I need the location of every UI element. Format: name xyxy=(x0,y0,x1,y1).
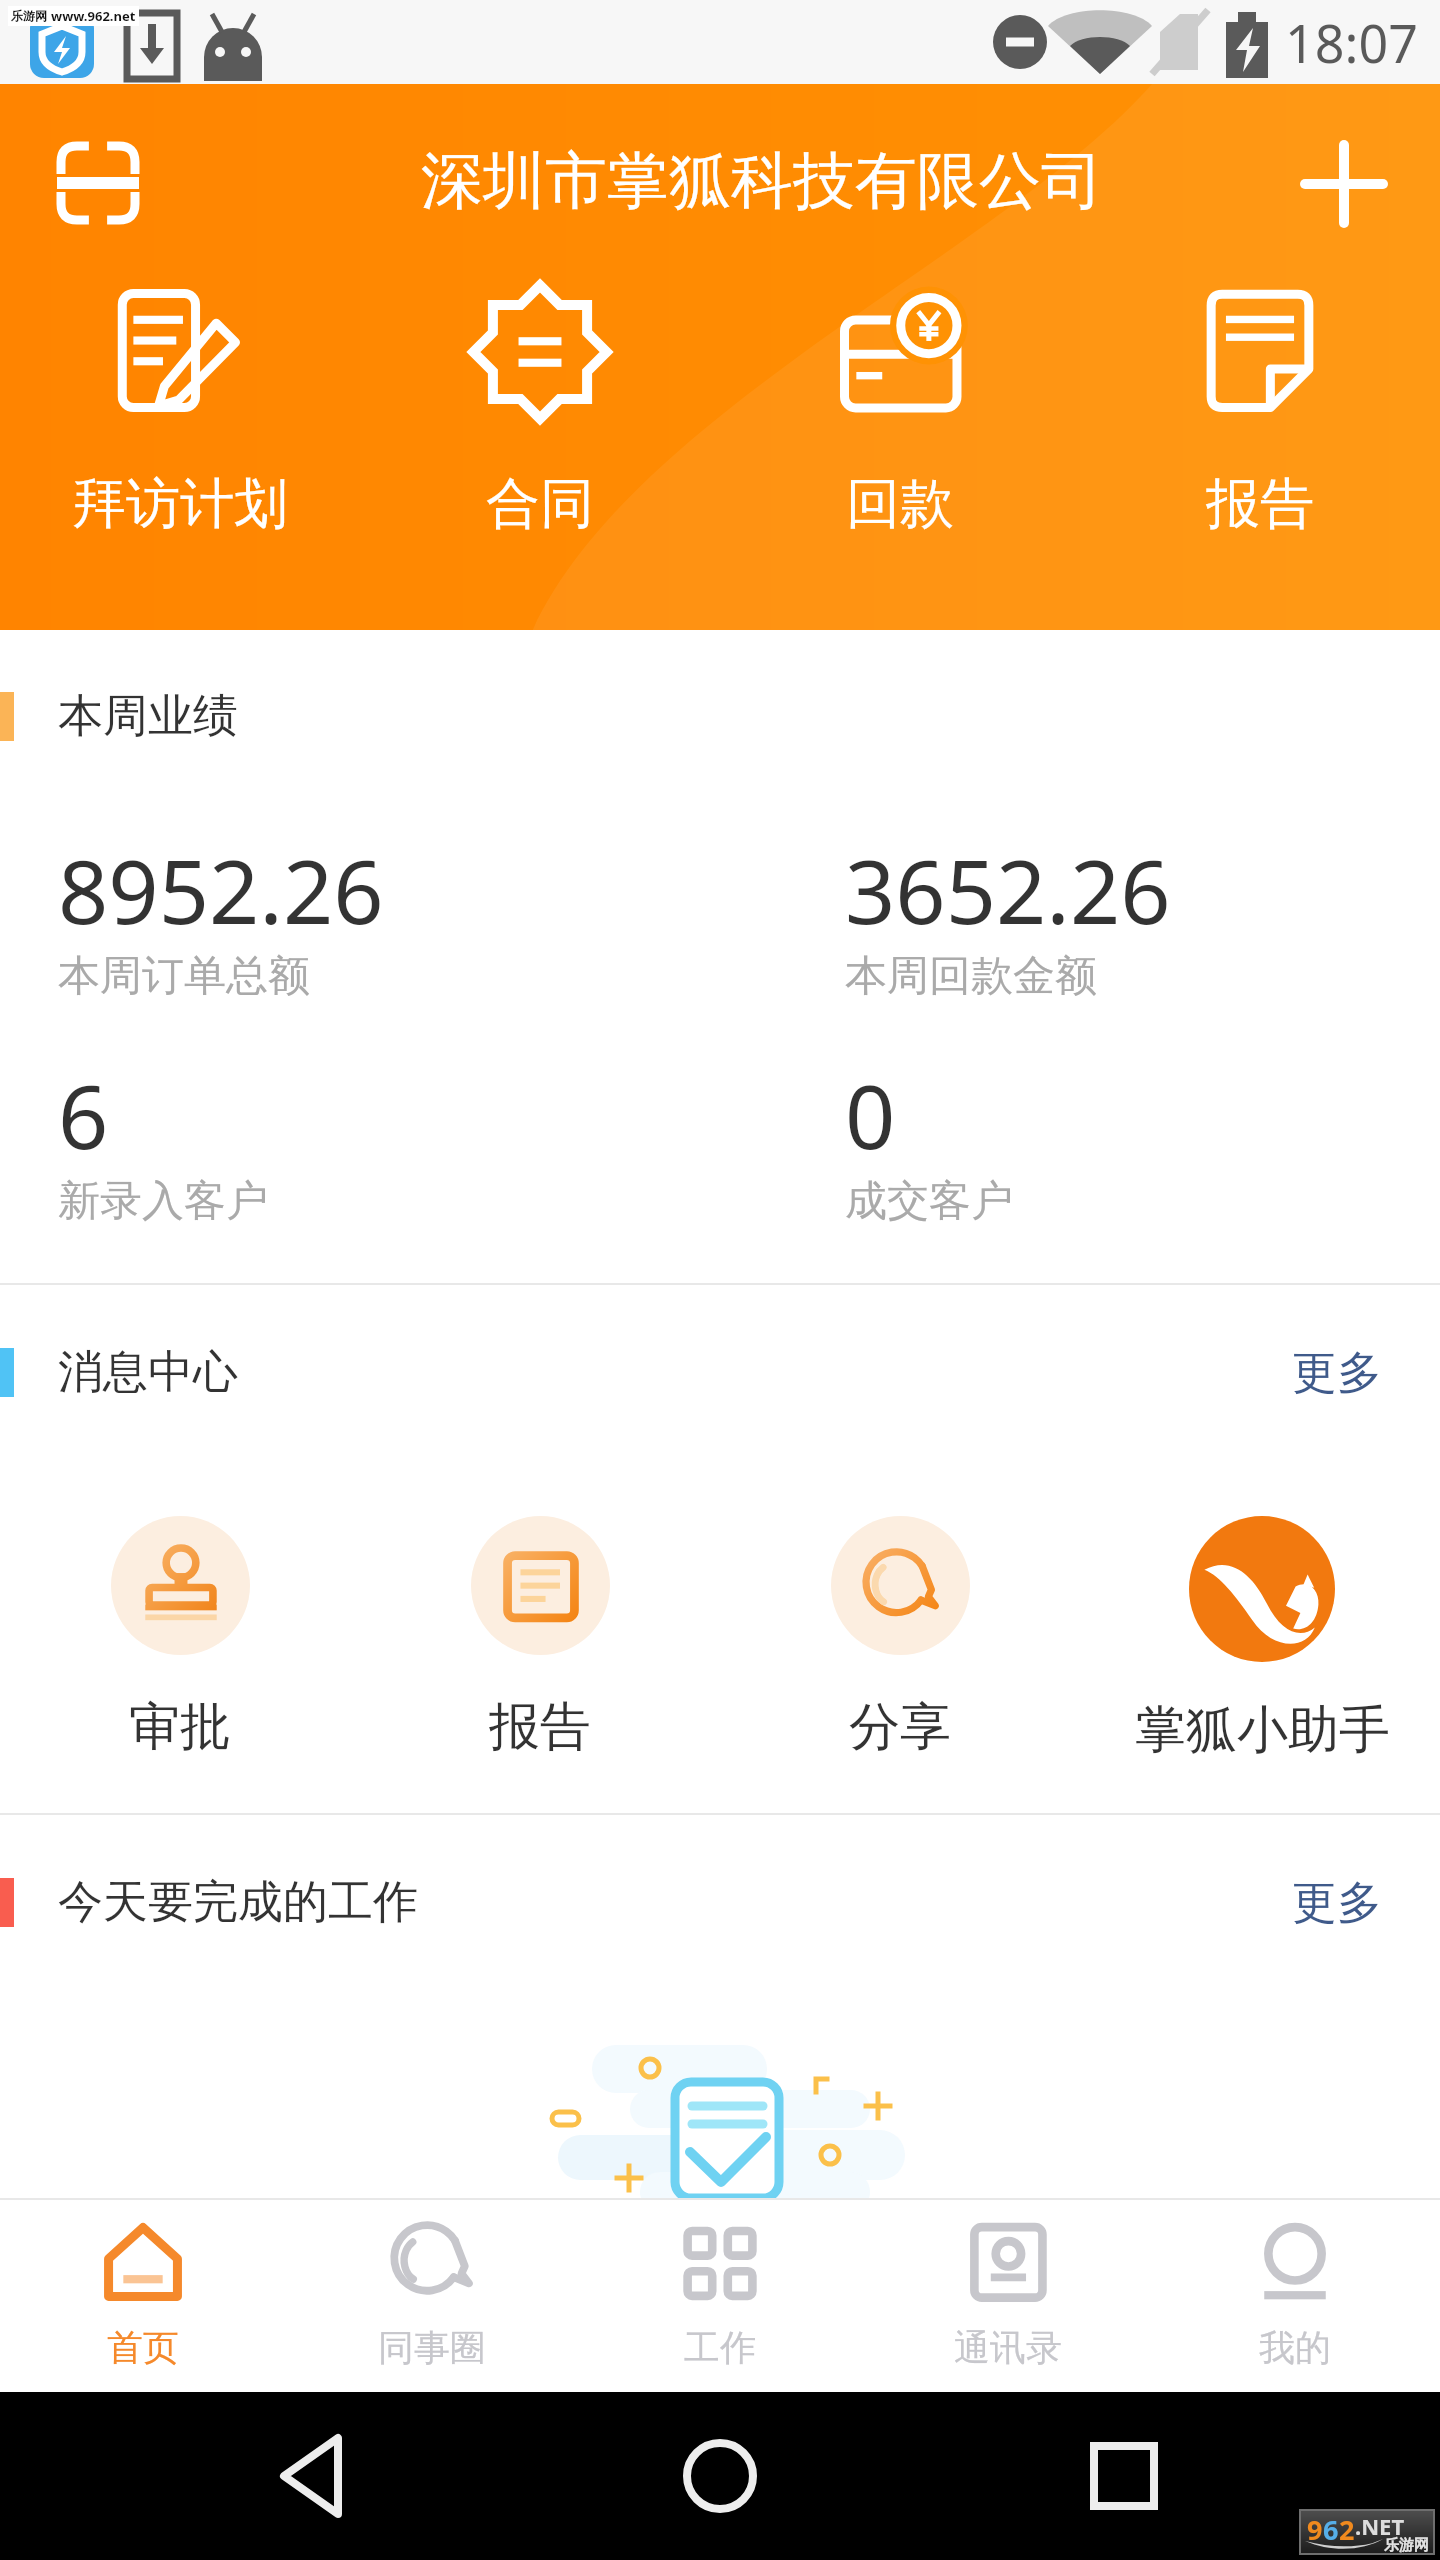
staticText: 6 xyxy=(58,1055,109,1175)
staticText: 拜访计划 xyxy=(72,470,288,538)
button[interactable]: 报告 xyxy=(1080,278,1440,538)
staticText: 9 xyxy=(1307,2511,1323,2548)
button[interactable]: 首页 xyxy=(3,2200,283,2392)
staticText: 回款 xyxy=(846,470,954,538)
staticText: 2 xyxy=(1339,2511,1355,2548)
staticText: 首页 xyxy=(107,2325,179,2370)
staticText: 6 xyxy=(1323,2511,1339,2548)
staticText: 更多 xyxy=(1292,1345,1382,1400)
staticText: 今天要完成的工作 xyxy=(58,1874,418,1931)
button[interactable]: 分享 xyxy=(780,1516,1020,1759)
button[interactable]: Scan xyxy=(57,142,139,224)
staticText: 审批 xyxy=(129,1695,231,1759)
staticText: 3652.26 xyxy=(845,830,1171,950)
button[interactable]: 拜访计划 xyxy=(0,278,360,538)
staticText: 新录入客户 xyxy=(58,1175,268,1228)
button[interactable]: 同事圈 xyxy=(292,2200,572,2392)
staticText: 本周订单总额 xyxy=(58,950,310,1003)
staticText: 本周回款金额 xyxy=(845,950,1097,1003)
button[interactable]: 审批 xyxy=(60,1516,300,1759)
button[interactable]: 掌狐小助手 xyxy=(1082,1516,1440,1762)
button[interactable]: Add xyxy=(1300,140,1388,228)
staticText: 分享 xyxy=(849,1695,951,1759)
staticText: 合同 xyxy=(486,470,594,538)
staticText: 8952.26 xyxy=(58,830,384,950)
staticText: 同事圈 xyxy=(378,2325,486,2370)
staticText: 乐游网 xyxy=(1384,2536,1429,2555)
button[interactable]: 更多 xyxy=(1232,1323,1440,1422)
staticText: 乐游网 xyxy=(11,7,51,23)
staticText: 掌狐小助手 xyxy=(1135,1698,1390,1762)
staticText: www.962.net xyxy=(51,7,136,25)
staticText: 成交客户 xyxy=(845,1175,1013,1228)
staticText: .NET xyxy=(1355,2511,1405,2541)
staticText: 0 xyxy=(845,1055,896,1175)
staticText: 工作 xyxy=(684,2325,756,2370)
staticText: 消息中心 xyxy=(58,1344,238,1401)
button[interactable]: 通讯录 xyxy=(868,2200,1148,2392)
button[interactable]: 回款 xyxy=(720,278,1080,538)
button[interactable]: 报告 xyxy=(420,1516,660,1759)
staticText: 18:07 xyxy=(1285,7,1418,78)
staticText: 报告 xyxy=(489,1695,591,1759)
staticText: 更多 xyxy=(1292,1875,1382,1930)
button[interactable]: 合同 xyxy=(360,278,720,538)
button[interactable]: 我的 xyxy=(1155,2200,1435,2392)
staticText: 通讯录 xyxy=(954,2325,1062,2370)
staticText: 报告 xyxy=(1206,470,1314,538)
staticText: 深圳市掌狐科技有限公司 xyxy=(421,142,1103,220)
button[interactable]: 更多 xyxy=(1232,1853,1440,1952)
staticText: 本周业绩 xyxy=(58,688,238,745)
staticText: 我的 xyxy=(1259,2325,1331,2370)
button[interactable]: 工作 xyxy=(580,2200,860,2392)
